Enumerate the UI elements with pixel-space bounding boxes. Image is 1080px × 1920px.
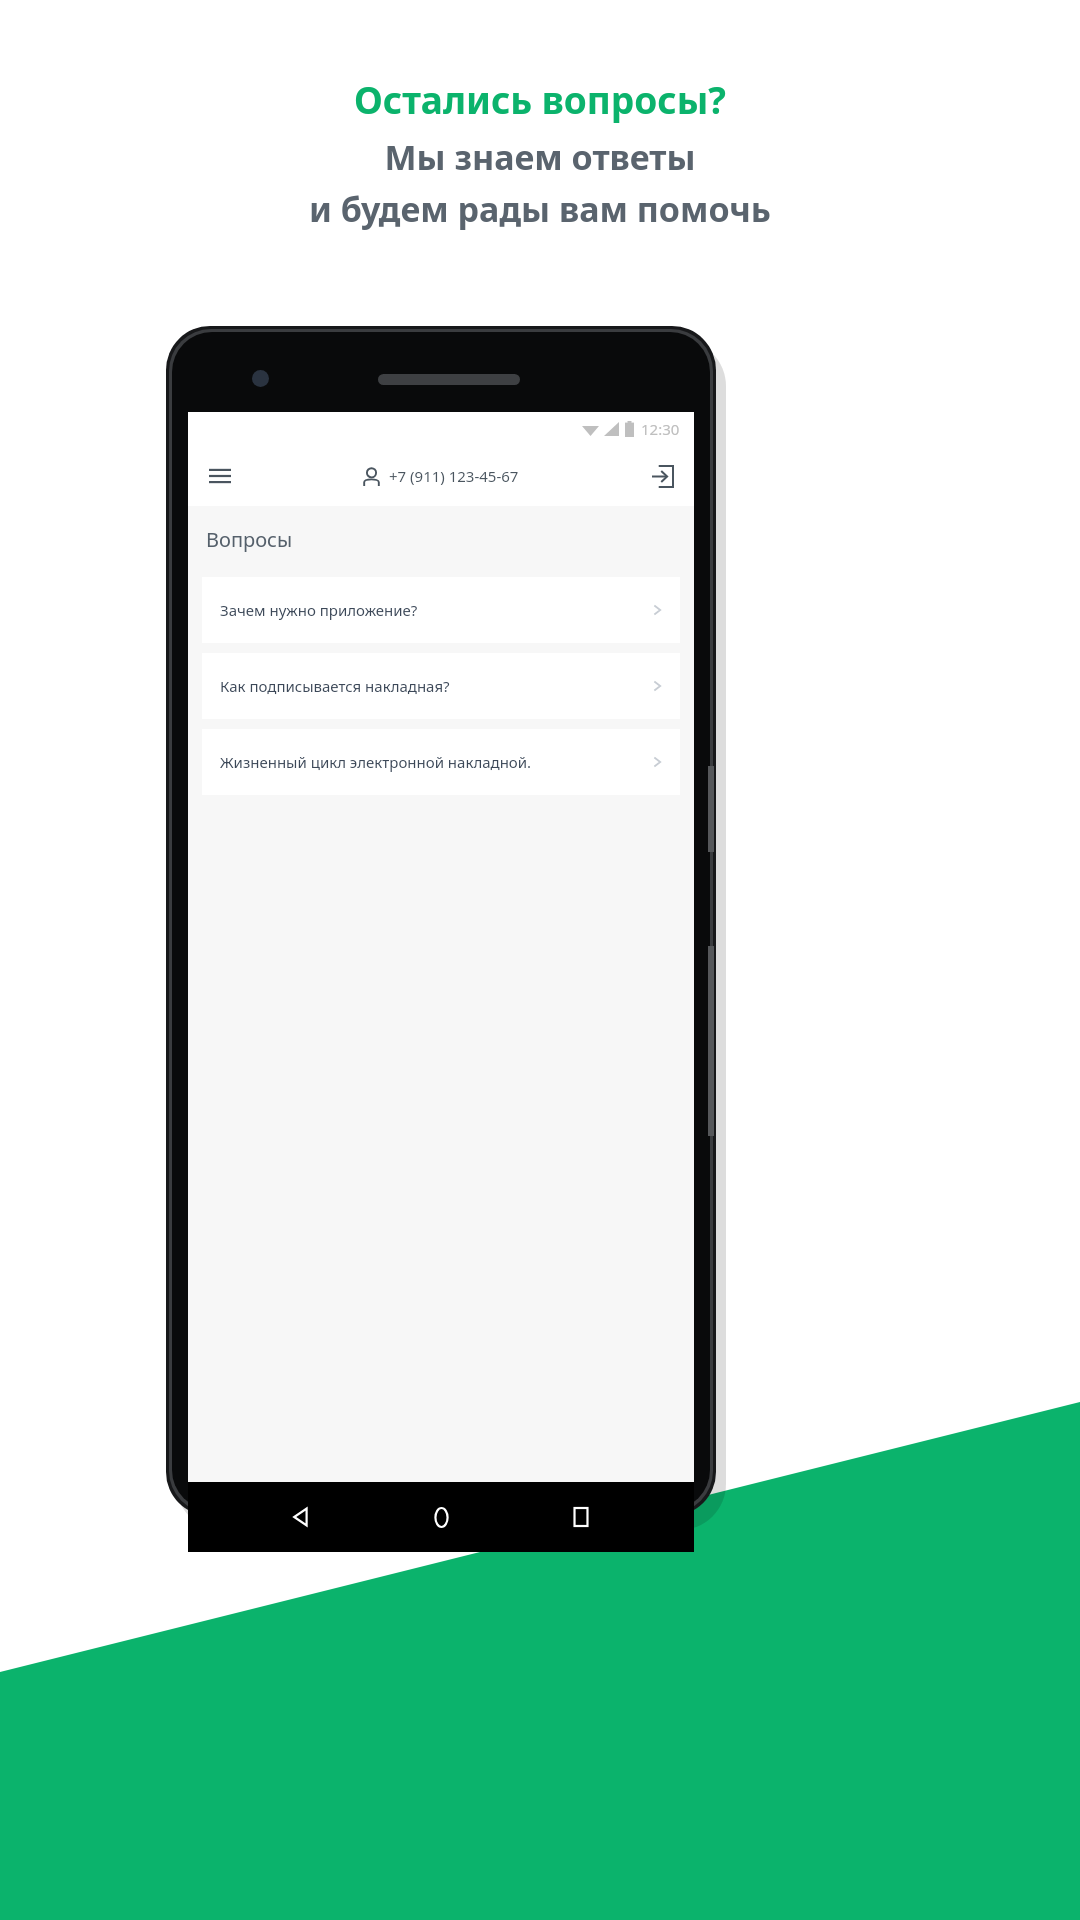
staticText: Мы знаем ответы	[384, 134, 696, 180]
staticText: Вопросы	[206, 526, 293, 553]
button[interactable]: Как подписывается накладная?	[202, 653, 680, 719]
staticText: и будем рады вам помочь	[309, 186, 771, 232]
button[interactable]: +7 (911) 123-45-67	[363, 466, 519, 486]
button[interactable]: Sign out	[640, 454, 684, 498]
button[interactable]: Зачем нужно приложение?	[202, 577, 680, 643]
button[interactable]: Жизненный цикл электронной накладной.	[202, 729, 680, 795]
staticText: Зачем нужно приложение?	[220, 600, 653, 620]
staticText: +7 (911) 123-45-67	[389, 466, 519, 486]
button[interactable]: Recent apps	[554, 1490, 608, 1544]
staticText: Остались вопросы?	[354, 74, 726, 124]
button[interactable]: Home	[414, 1490, 468, 1544]
staticText: 12:30	[641, 419, 680, 439]
button[interactable]: Menu	[198, 454, 242, 498]
staticText: Жизненный цикл электронной накладной.	[220, 752, 653, 772]
staticText: Как подписывается накладная?	[220, 676, 653, 696]
button[interactable]: Back	[274, 1490, 328, 1544]
